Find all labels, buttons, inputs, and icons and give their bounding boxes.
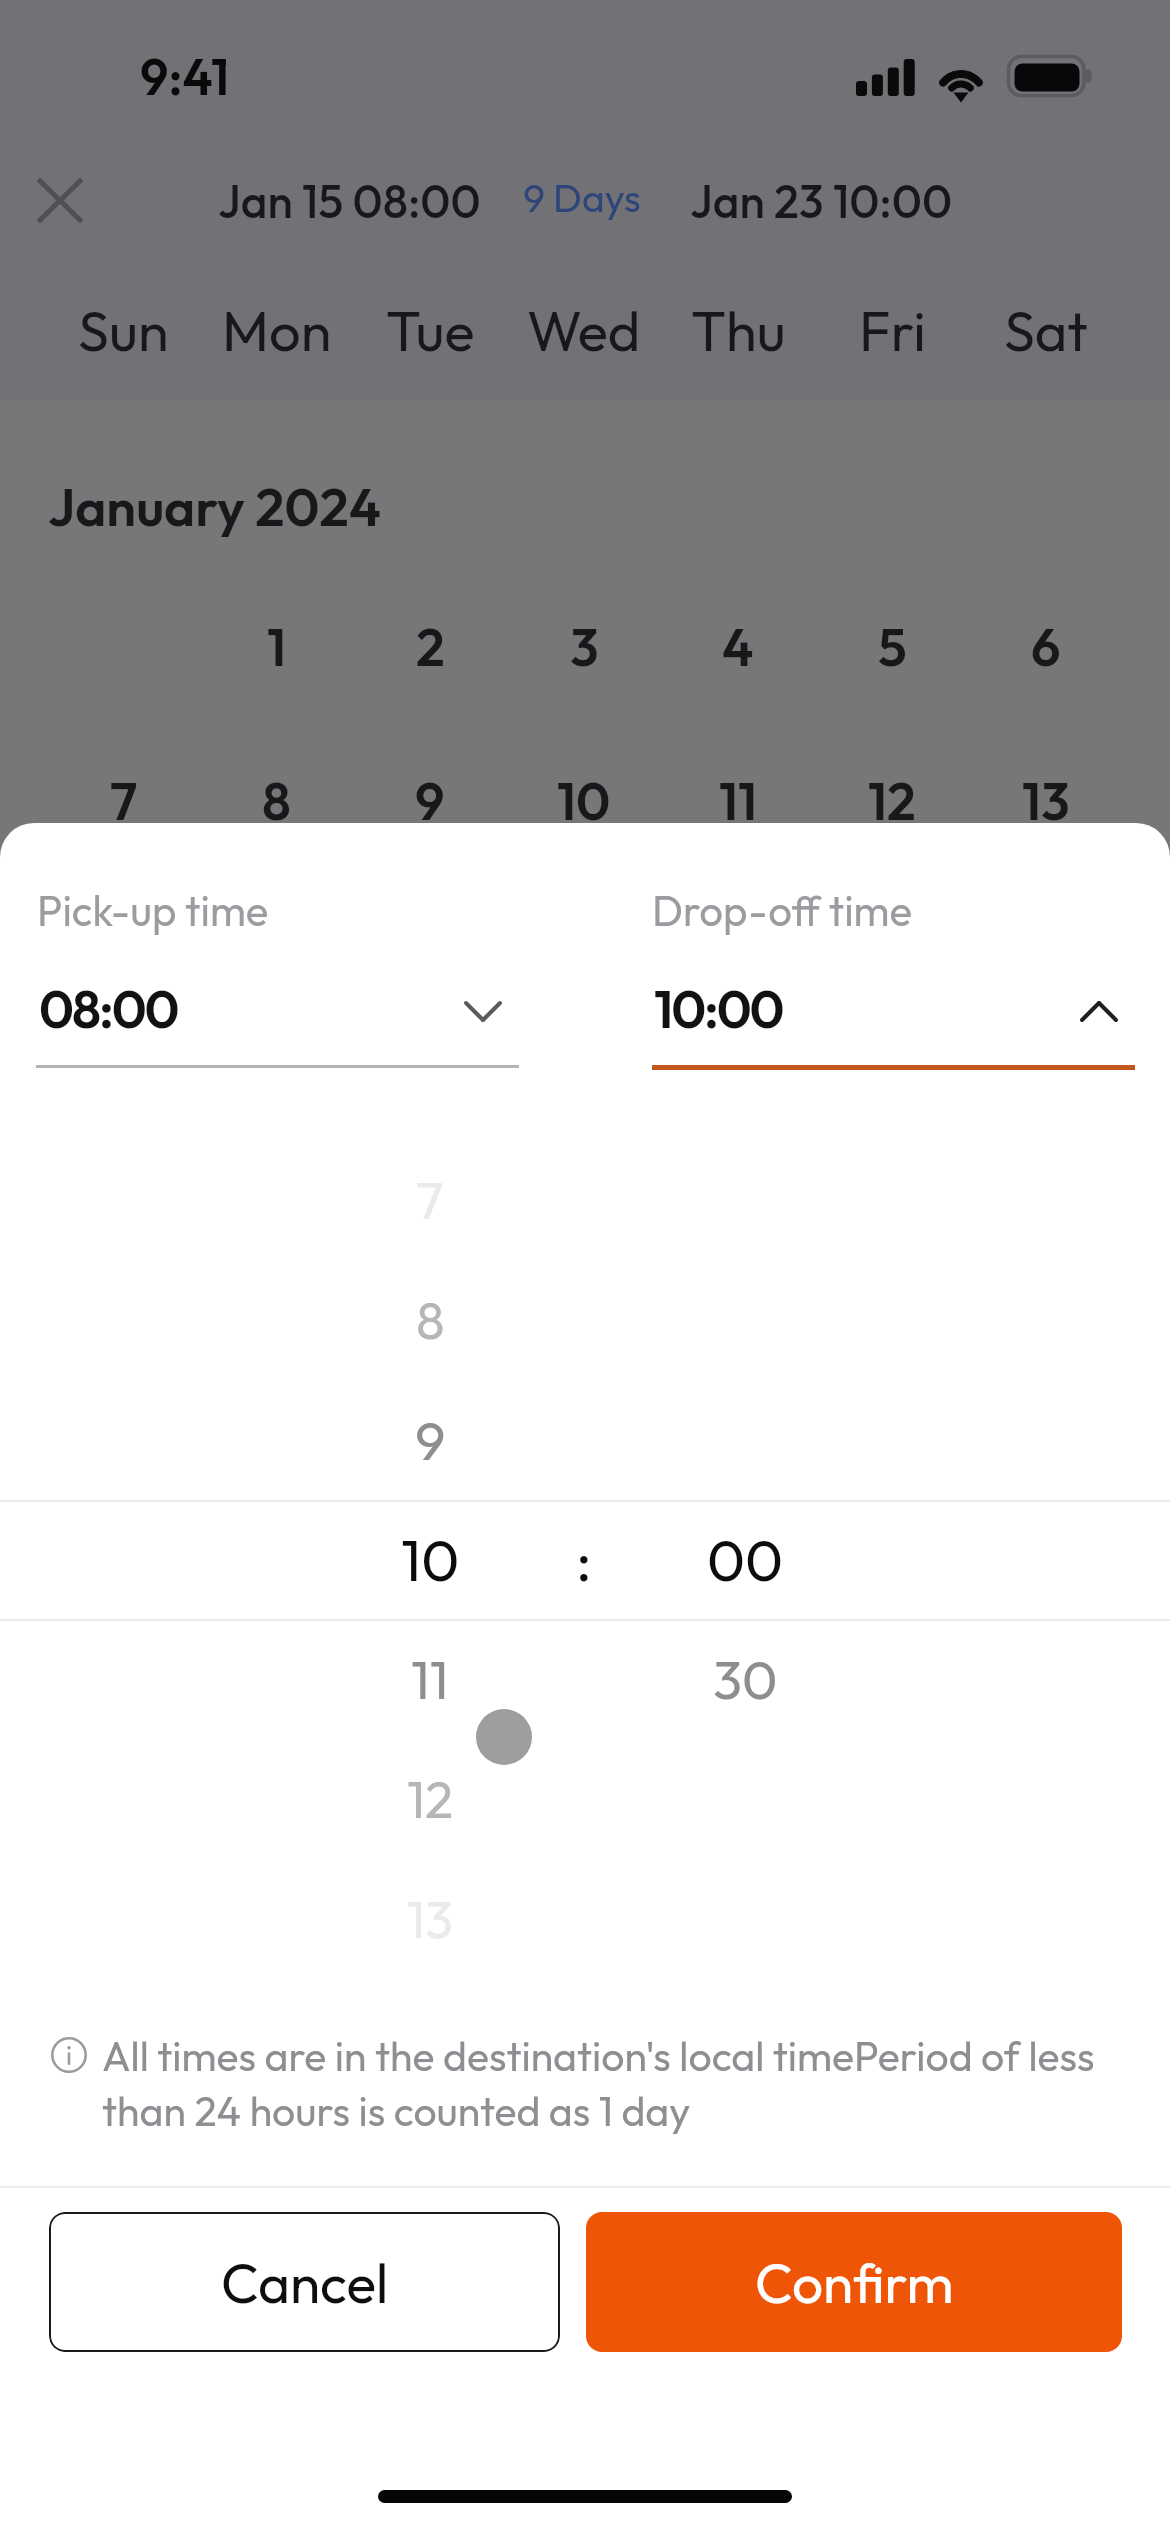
staticText: 9 Days <box>523 173 641 222</box>
staticText: Drop-off time <box>652 884 912 937</box>
button[interactable]: 30 <box>685 1619 805 1739</box>
button[interactable]: Jan 23 10:00 <box>690 172 953 230</box>
staticText: 7 <box>110 768 138 834</box>
staticText: All times are in the destination's local… <box>102 2030 1102 2136</box>
staticText: Confirm <box>755 2248 954 2317</box>
button[interactable]: 9 Days <box>523 173 641 222</box>
staticText: 00 <box>707 1523 784 1596</box>
staticText: Sat <box>1004 295 1088 365</box>
button[interactable]: : <box>554 1499 614 1619</box>
staticText: 9 <box>415 1406 446 1474</box>
staticText: 12 <box>868 768 916 834</box>
staticText: Thu <box>691 295 786 365</box>
staticText: Wed <box>527 295 641 365</box>
staticText: 11 <box>411 1645 449 1713</box>
staticText: 4 <box>722 614 754 680</box>
staticText: Sun <box>78 295 169 365</box>
staticText: 10:00 <box>654 975 783 1042</box>
staticText: 9 <box>415 768 445 834</box>
staticText: 2 <box>416 614 445 680</box>
button[interactable]: 11 <box>370 1619 490 1739</box>
staticText: 5 <box>878 614 907 680</box>
staticText: Jan 15 08:00 <box>218 172 481 230</box>
button[interactable]: Jan 15 08:00 <box>218 172 481 230</box>
staticText: 12 <box>407 1766 454 1832</box>
staticText: 30 <box>713 1645 778 1713</box>
staticText: 13 <box>1022 768 1070 834</box>
staticText: 13 <box>407 1886 454 1952</box>
button[interactable]: 00 <box>685 1499 805 1619</box>
staticText: 10 <box>557 768 611 834</box>
staticText: Jan 23 10:00 <box>690 172 953 230</box>
staticText: Tue <box>386 295 475 365</box>
staticText: 8 <box>262 768 291 834</box>
button[interactable]: 12 <box>370 1739 490 1859</box>
staticText: 9:41 <box>140 45 230 108</box>
staticText: 10 <box>401 1523 460 1596</box>
staticText: 11 <box>719 768 758 834</box>
button[interactable]: 10 <box>370 1499 490 1619</box>
staticText: 3 <box>570 614 599 680</box>
staticText: 08:00 <box>39 975 178 1042</box>
staticText: Fri <box>859 295 926 365</box>
button[interactable]: 8 <box>370 1260 490 1380</box>
staticText: 8 <box>416 1287 445 1353</box>
staticText: Mon <box>222 295 332 365</box>
staticText: 1 <box>267 614 287 680</box>
staticText: Cancel <box>221 2248 389 2317</box>
staticText: 7 <box>416 1167 444 1233</box>
staticText: 6 <box>1031 614 1061 680</box>
button[interactable]: Collapse drop-off time <box>1059 969 1139 1053</box>
staticText: Pick-up time <box>37 884 269 937</box>
staticText: January 2024 <box>48 473 381 540</box>
button[interactable]: Expand pick-up time <box>443 969 523 1053</box>
button[interactable]: Close <box>20 160 100 240</box>
button[interactable]: 13 <box>370 1859 490 1979</box>
button[interactable]: 9 <box>370 1380 490 1500</box>
button[interactable]: Cancel <box>49 2212 560 2352</box>
staticText: : <box>576 1523 592 1596</box>
button[interactable]: Confirm <box>586 2212 1122 2352</box>
